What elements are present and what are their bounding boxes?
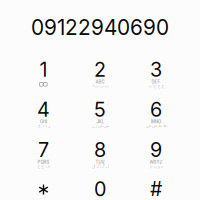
staticText: ت پ ب ا (92, 83, 108, 88)
staticText: 1 (39, 58, 47, 82)
button[interactable]: 1 (15, 56, 71, 96)
button[interactable]: Star (15, 169, 71, 200)
staticText: MNO (151, 119, 161, 124)
staticText: DEF (151, 79, 160, 84)
staticText: 9 (150, 138, 162, 162)
staticText: ر ذ د خ (37, 123, 49, 128)
staticText: ف غ ع (37, 163, 50, 168)
staticText: ظ ط ض ص (145, 123, 166, 128)
button[interactable]: 09122940690 (6, 12, 194, 42)
staticText: 3 (150, 58, 162, 82)
button[interactable]: 8 (72, 136, 128, 176)
button[interactable]: 9 (128, 136, 184, 176)
staticText: JKL (96, 119, 103, 124)
staticText: GHI (40, 119, 47, 124)
button[interactable]: 4 (15, 96, 71, 136)
button[interactable]: 0 (72, 175, 128, 200)
button[interactable]: # (128, 175, 184, 200)
staticText: 09122940690 (31, 15, 169, 40)
staticText: PQRS (37, 159, 49, 165)
staticText: ح چ ج ث (148, 83, 164, 88)
button[interactable]: 3 (128, 56, 184, 96)
staticText: ش س ژ ز (91, 123, 108, 128)
staticText: ل گ ک ق (91, 163, 108, 168)
staticText: 7 (38, 138, 49, 162)
staticText: 6 (150, 98, 162, 121)
button[interactable]: 5 (72, 96, 128, 136)
staticText: 5 (94, 98, 106, 121)
staticText: 4 (37, 98, 50, 121)
staticText: ه و ن م (149, 163, 162, 168)
staticText: 8 (94, 138, 106, 162)
staticText: TUV (95, 159, 104, 165)
staticText: ABC (95, 79, 104, 84)
button[interactable]: 2 (72, 56, 128, 96)
staticText: # (150, 177, 162, 200)
staticText: WXYZ (149, 159, 162, 165)
staticText: 0 (94, 177, 106, 200)
button[interactable]: 7 (15, 136, 71, 176)
staticText: 2 (94, 58, 106, 82)
button[interactable]: 6 (128, 96, 184, 136)
